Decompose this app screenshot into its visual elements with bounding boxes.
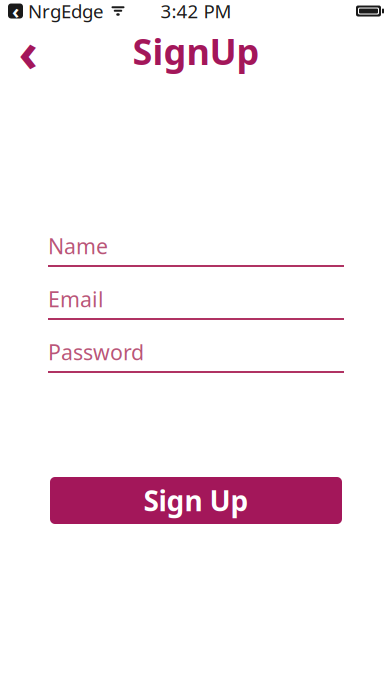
staticText: Sign Up [143, 482, 248, 519]
staticText: ‹ [18, 16, 37, 86]
staticText: Name [48, 232, 108, 260]
staticText: ‹ [12, 0, 19, 24]
button[interactable]: Back [6, 29, 50, 73]
staticText: SignUp [132, 27, 259, 75]
button[interactable]: Sign Up [50, 477, 342, 524]
staticText: Password [48, 338, 144, 366]
staticText: NrgEdge [23, 0, 104, 23]
staticText: Email [48, 285, 104, 313]
staticText: 3:42 PM [160, 0, 231, 23]
